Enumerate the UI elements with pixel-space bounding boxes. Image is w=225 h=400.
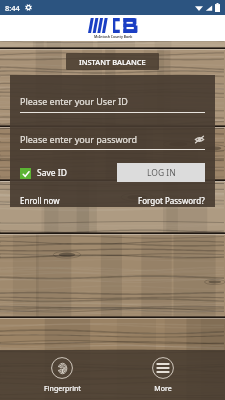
button[interactable]: Please enter your password — [20, 133, 205, 150]
staticText: Please enter your User ID — [20, 95, 128, 107]
staticText: Enroll now — [20, 195, 60, 206]
button[interactable]: Enroll now — [20, 195, 60, 206]
button[interactable]: INSTANT BALANCE — [66, 53, 159, 70]
staticText: Fingerprint — [44, 384, 81, 394]
button[interactable]: Show password — [193, 133, 205, 145]
button[interactable]: LOG IN — [117, 163, 205, 182]
staticText: 8:44 — [5, 3, 20, 13]
staticText: LOG IN — [147, 167, 176, 179]
button[interactable]: Save ID — [20, 167, 67, 179]
button[interactable]: Please enter your User ID — [20, 95, 205, 113]
staticText: Save ID — [37, 167, 67, 179]
staticText: McIntosh County Bank — [94, 34, 133, 39]
staticText: More — [154, 384, 172, 394]
staticText: Forgot Password? — [138, 195, 205, 206]
staticText: Please enter your password — [20, 133, 138, 145]
other: More — [152, 357, 174, 379]
button[interactable]: More — [123, 357, 203, 394]
button[interactable]: Forgot Password? — [138, 195, 205, 206]
staticText: INSTANT BALANCE — [79, 57, 146, 67]
button[interactable]: Fingerprint login — [22, 357, 102, 394]
other: Fingerprint login — [51, 357, 73, 379]
